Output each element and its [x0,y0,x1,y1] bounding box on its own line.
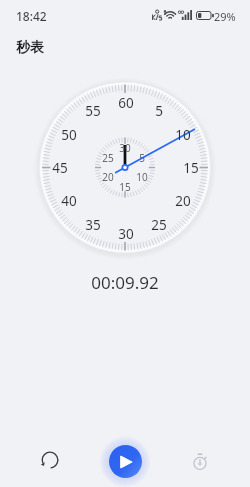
staticText: 20 [102,170,114,184]
staticText: 50 [61,126,77,144]
staticText: 25 [102,151,114,165]
staticText: 15 [183,159,199,177]
staticText: 30 [119,141,131,155]
staticText: 5 [139,151,145,165]
staticText: 10 [136,170,148,184]
staticText: 30 [118,225,134,243]
staticText: 55 [85,102,101,120]
button[interactable]: Reset [34,444,66,476]
staticText: 20 [175,192,191,210]
staticText: 18:42 [16,8,47,24]
staticText: 秒表 [16,39,44,57]
staticText: 15 [119,180,131,194]
staticText: 25 [151,216,167,234]
staticText: 40 [61,192,77,210]
staticText: 00:09.92 [0,271,250,294]
button[interactable]: Lap [184,445,216,477]
staticText: 60 [118,94,134,112]
staticText: 5 [155,102,163,120]
staticText: 45 [52,159,68,177]
button[interactable]: Start [109,445,142,478]
staticText: 29% [214,9,236,24]
staticText: 10 [175,126,191,144]
staticText: 35 [85,216,101,234]
